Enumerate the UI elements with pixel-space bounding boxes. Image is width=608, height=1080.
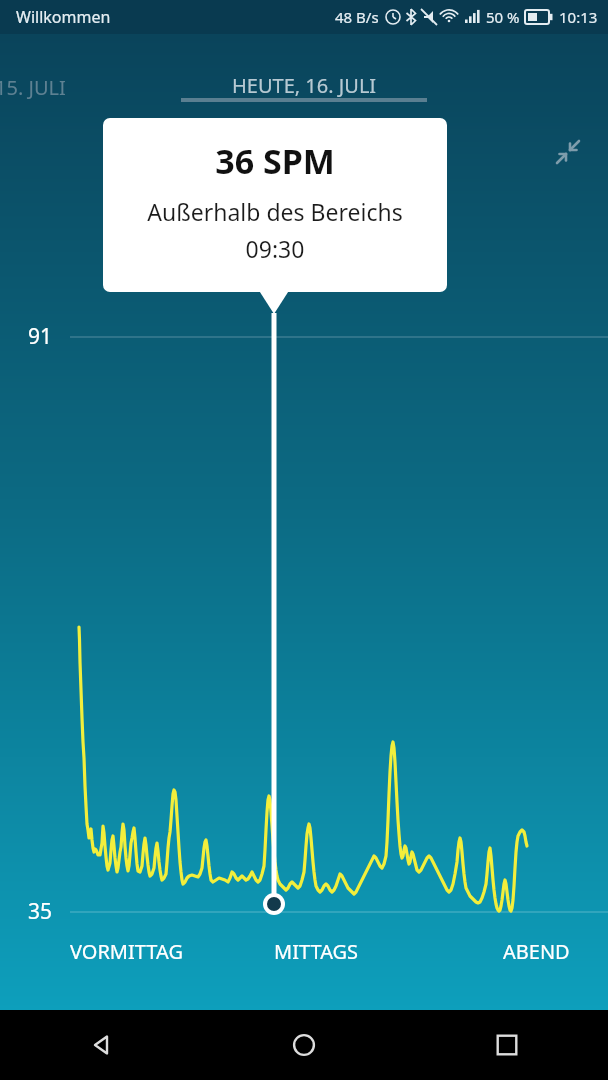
staticText: 36 SPM bbox=[103, 138, 447, 184]
staticText: HEUTE, 16. JULI bbox=[232, 72, 377, 99]
staticText: Willkommen bbox=[16, 6, 111, 28]
staticText: 35 bbox=[28, 897, 53, 926]
button[interactable]: Letzte Apps bbox=[405, 1010, 608, 1080]
staticText: ABEND bbox=[503, 938, 570, 965]
button[interactable]: 15. JULI bbox=[0, 62, 120, 112]
staticText: MITTAGS bbox=[274, 938, 359, 965]
button[interactable]: Verkleinern bbox=[548, 132, 588, 172]
staticText: 50 % bbox=[486, 7, 520, 27]
button[interactable]: Zurück bbox=[0, 1010, 202, 1080]
button[interactable]: Startbildschirm bbox=[202, 1010, 405, 1080]
staticText: 15. JULI bbox=[0, 74, 66, 101]
staticText: 91 bbox=[28, 322, 53, 351]
button[interactable]: 36 SPM bbox=[103, 118, 447, 292]
staticText: 10:13 bbox=[559, 7, 598, 27]
staticText: 48 B/s bbox=[335, 7, 379, 27]
staticText: VORMITTAG bbox=[70, 938, 183, 965]
staticText: Außerhalb des Bereichs bbox=[103, 196, 447, 227]
staticText: Herzfrequenzen bbox=[150, 240, 355, 277]
button[interactable]: HEUTE, 16. JULI bbox=[181, 62, 427, 108]
staticText: 09:30 bbox=[103, 233, 447, 264]
